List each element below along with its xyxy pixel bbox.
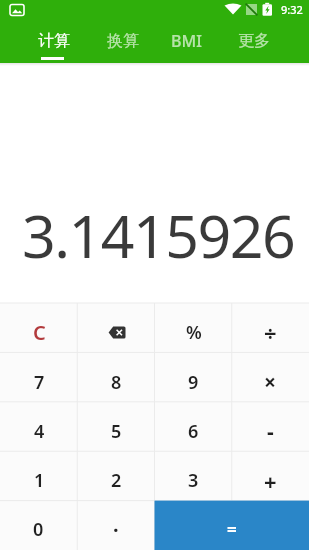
staticText: 8 xyxy=(111,370,122,395)
staticText: - xyxy=(267,417,274,446)
button[interactable]: 更多 xyxy=(221,18,287,63)
staticText: 换算 xyxy=(107,31,139,51)
staticText: = xyxy=(227,518,237,541)
staticText: 2 xyxy=(111,468,122,493)
button[interactable]: 4 xyxy=(0,403,78,452)
staticText: 6 xyxy=(188,419,199,444)
button[interactable]: 5 xyxy=(78,403,155,452)
button[interactable]: % xyxy=(155,303,232,353)
staticText: · xyxy=(113,516,119,543)
staticText: C xyxy=(33,319,46,346)
staticText: 4 xyxy=(34,419,45,444)
staticText: 5 xyxy=(111,419,122,444)
staticText: % xyxy=(186,320,202,345)
button[interactable]: 2 xyxy=(78,452,155,501)
button[interactable]: 7 xyxy=(0,353,78,403)
button[interactable]: 8 xyxy=(78,353,155,403)
button[interactable]: · xyxy=(77,501,154,550)
button[interactable] xyxy=(78,303,155,353)
staticText: 9:32 xyxy=(281,2,303,17)
button[interactable]: = xyxy=(154,501,309,550)
button[interactable]: × xyxy=(232,353,309,403)
button[interactable]: 计算 xyxy=(21,18,87,63)
button[interactable]: C xyxy=(0,303,78,353)
button[interactable]: ÷ xyxy=(232,303,309,353)
button[interactable]: 1 xyxy=(0,452,78,501)
staticText: 3.1415926 xyxy=(22,195,295,275)
button[interactable]: 9 xyxy=(155,353,232,403)
staticText: 计算 xyxy=(38,31,70,51)
button[interactable]: 3 xyxy=(155,452,232,501)
button[interactable]: 6 xyxy=(155,403,232,452)
staticText: ÷ xyxy=(264,317,277,347)
staticText: 3 xyxy=(188,468,199,493)
staticText: 更多 xyxy=(238,31,270,51)
button[interactable]: BMI xyxy=(156,18,216,63)
staticText: 0 xyxy=(33,517,44,542)
button[interactable]: + xyxy=(232,452,309,501)
button[interactable]: 0 xyxy=(0,501,77,550)
button[interactable]: 换算 xyxy=(90,18,156,63)
staticText: 1 xyxy=(34,468,45,493)
staticText: 9 xyxy=(188,370,199,395)
staticText: + xyxy=(264,466,277,496)
staticText: BMI xyxy=(171,30,202,52)
staticText: 7 xyxy=(34,370,45,395)
button[interactable]: - xyxy=(232,403,309,452)
staticText: × xyxy=(264,368,277,397)
